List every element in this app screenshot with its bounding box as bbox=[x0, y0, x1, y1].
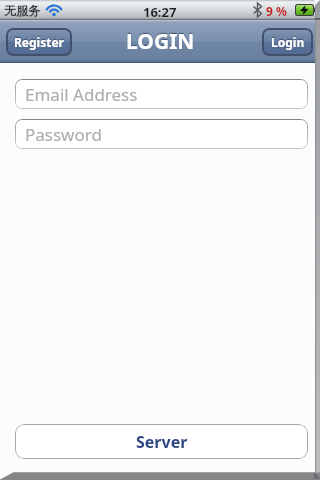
staticText: Password bbox=[25, 123, 102, 146]
staticText: Server bbox=[136, 431, 188, 453]
staticText: Email Address bbox=[25, 83, 138, 106]
button[interactable]: Login bbox=[262, 28, 313, 56]
staticText: 16:27 bbox=[143, 3, 177, 21]
staticText: 无服务 bbox=[4, 3, 40, 18]
staticText: 9 % bbox=[266, 3, 287, 19]
staticText: LOGIN bbox=[126, 27, 195, 56]
button[interactable]: Register bbox=[6, 28, 72, 56]
staticText: Login bbox=[271, 34, 305, 50]
button[interactable]: Email Address bbox=[15, 79, 308, 109]
button[interactable]: Server bbox=[15, 424, 308, 459]
button[interactable]: Password bbox=[15, 119, 308, 149]
staticText: Register bbox=[14, 34, 64, 50]
